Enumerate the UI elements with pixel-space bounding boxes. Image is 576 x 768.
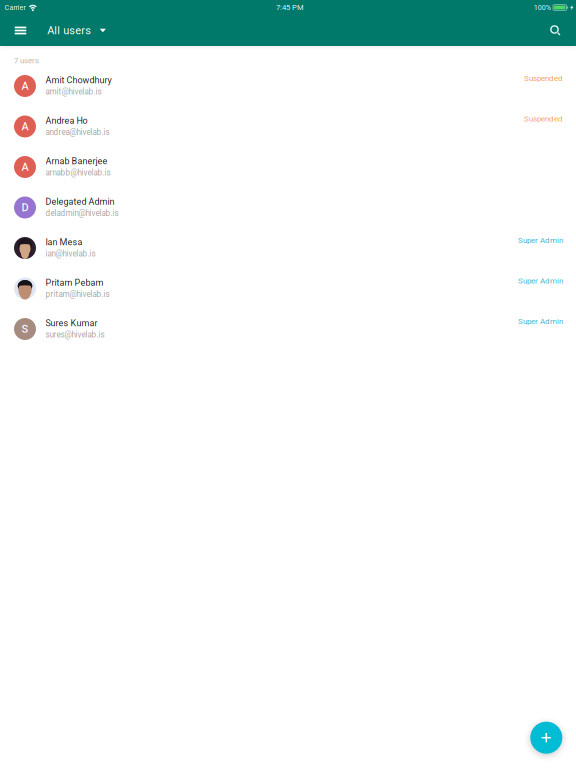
- staticText: andrea@hivelab.is: [45, 127, 109, 137]
- staticText: D: [21, 201, 28, 214]
- staticText: Arnab Banerjee: [45, 156, 107, 166]
- staticText: ian@hivelab.is: [45, 249, 95, 258]
- button[interactable]: Search: [540, 15, 571, 46]
- button[interactable]: All users: [33, 15, 112, 46]
- staticText: pritam@hivelab.is: [45, 289, 109, 299]
- staticText: Pritam Pebam: [45, 277, 103, 288]
- staticText: Super Admin: [518, 276, 563, 285]
- staticText: amit@hivelab.is: [45, 87, 101, 96]
- button[interactable]: S: [0, 309, 576, 349]
- staticText: deladmin@hivelab.is: [45, 208, 118, 218]
- button[interactable]: A: [0, 66, 576, 106]
- button[interactable]: Open navigation menu: [8, 15, 33, 46]
- staticText: sures@hivelab.is: [45, 330, 104, 339]
- staticText: A: [21, 80, 28, 92]
- staticText: Sures Kumar: [45, 318, 97, 328]
- button[interactable]: Add user: [530, 722, 562, 754]
- staticText: arnabb@hivelab.is: [45, 168, 110, 177]
- staticText: Suspended: [524, 114, 563, 123]
- staticText: Ian Mesa: [45, 237, 82, 247]
- staticText: A: [21, 120, 28, 133]
- button[interactable]: Pritam Pebam: [0, 268, 576, 309]
- staticText: Amit Chowdhury: [45, 75, 111, 85]
- button[interactable]: A: [0, 147, 576, 187]
- staticText: All users: [47, 24, 91, 37]
- staticText: Carrier: [4, 3, 25, 12]
- staticText: S: [21, 323, 28, 335]
- staticText: 7:45 PM: [276, 3, 304, 12]
- staticText: Delegated Admin: [45, 196, 114, 207]
- staticText: A: [21, 161, 28, 173]
- staticText: Andrea Ho: [45, 115, 87, 126]
- button[interactable]: A: [0, 106, 576, 147]
- staticText: Super Admin: [518, 235, 563, 245]
- staticText: 7 users: [14, 56, 39, 65]
- button[interactable]: D: [0, 187, 576, 228]
- button[interactable]: Ian Mesa: [0, 228, 576, 268]
- staticText: Super Admin: [518, 316, 563, 326]
- staticText: 100%: [534, 3, 551, 12]
- staticText: Suspended: [524, 73, 563, 83]
